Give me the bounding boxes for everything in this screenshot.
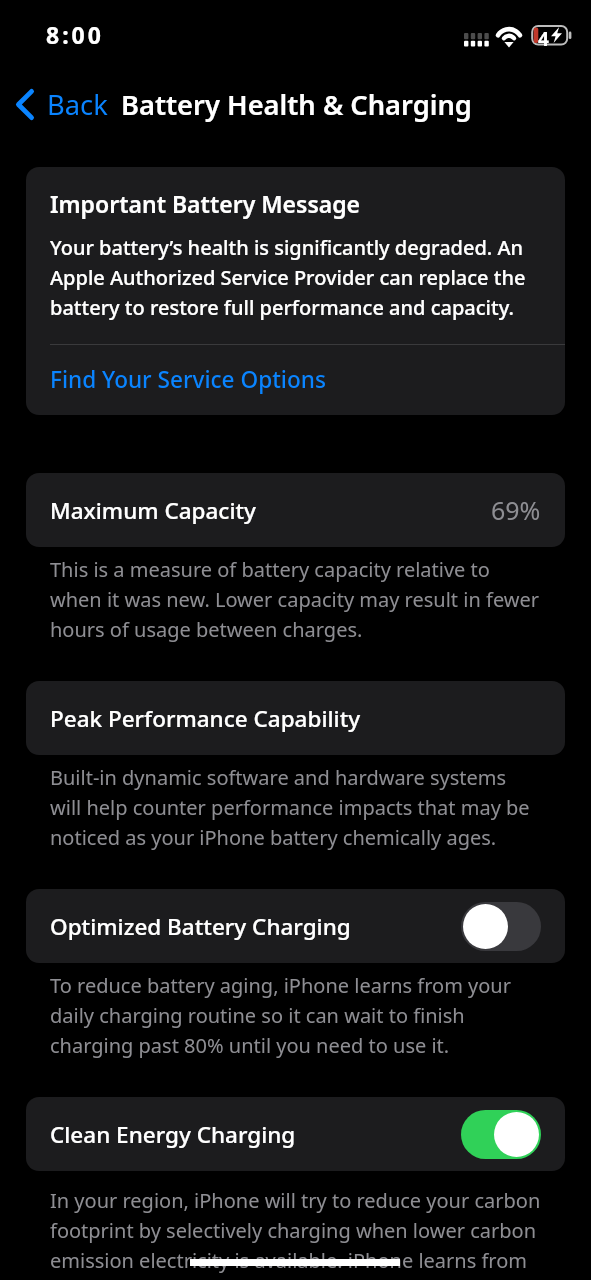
staticText: Maximum Capacity [50, 495, 256, 526]
staticText: To reduce battery aging, iPhone learns f… [50, 970, 541, 1060]
other: Back [16, 89, 34, 120]
button[interactable]: Find Your Service Options [26, 345, 565, 415]
button[interactable]: Turn on [461, 902, 541, 951]
button[interactable]: Optimized Battery Charging [26, 889, 565, 963]
staticText: Find Your Service Options [50, 364, 326, 395]
staticText: Important Battery Message [50, 188, 361, 219]
staticText: Back [47, 86, 108, 123]
staticText: 8:00 [46, 19, 104, 50]
staticText: Peak Performance Capability [50, 703, 361, 734]
button[interactable]: Clean Energy Charging [26, 1097, 565, 1171]
staticText: Built-in dynamic software and hardware s… [50, 762, 541, 852]
staticText: This is a measure of battery capacity re… [50, 554, 541, 644]
button[interactable]: Back [8, 86, 116, 123]
staticText: Your battery’s health is significantly d… [50, 232, 541, 322]
staticText: In your region, iPhone will try to reduc… [50, 1185, 541, 1275]
staticText: 69% [491, 493, 541, 527]
other: Wi-Fi [494, 24, 526, 48]
other: Cellular signal [464, 33, 490, 47]
button[interactable]: Turn off [461, 1110, 541, 1159]
button[interactable]: Maximum Capacity [26, 473, 565, 547]
staticText: 4 [538, 26, 549, 52]
button[interactable]: Peak Performance Capability [26, 681, 565, 755]
other: Battery charging [531, 25, 573, 46]
staticText: Optimized Battery Charging [50, 911, 351, 942]
staticText: Clean Energy Charging [50, 1119, 296, 1150]
staticText: Battery Health & Charging [121, 86, 472, 123]
